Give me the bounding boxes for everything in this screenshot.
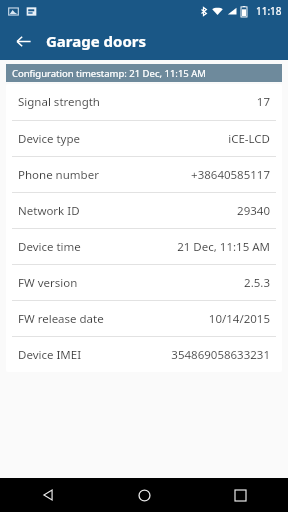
staticText: +38640585117 (191, 167, 270, 183)
staticText: 11:18 (256, 4, 282, 18)
button[interactable]: Phone number (6, 157, 282, 192)
staticText: Signal strength (18, 94, 100, 110)
staticText: 29340 (237, 203, 270, 219)
staticText: Network ID (18, 203, 80, 219)
button[interactable]: FW version (6, 265, 282, 300)
staticText: Configuration timestamp: 21 Dec, 11:15 A… (12, 67, 206, 80)
button[interactable]: Home (96, 478, 192, 512)
button[interactable]: FW release date (6, 301, 282, 336)
button[interactable]: Device time (6, 229, 282, 264)
staticText: FW version (18, 275, 78, 291)
button[interactable]: Back (0, 478, 96, 512)
staticText: iCE-LCD (228, 131, 270, 147)
staticText: 2.5.3 (244, 275, 270, 291)
button[interactable]: Network ID (6, 193, 282, 228)
button[interactable]: Device IMEI (6, 337, 282, 372)
button[interactable]: Signal strength (6, 84, 282, 120)
staticText: 354869058633231 (171, 347, 270, 363)
button[interactable]: Back (8, 26, 38, 56)
staticText: Garage doors (46, 31, 147, 51)
staticText: Device type (18, 131, 81, 147)
staticText: 10/14/2015 (208, 311, 270, 327)
staticText: FW release date (18, 311, 104, 327)
staticText: 21 Dec, 11:15 AM (177, 239, 270, 255)
button[interactable]: Device type (6, 121, 282, 156)
button[interactable]: Recent apps (192, 478, 288, 512)
staticText: Device time (18, 239, 81, 255)
staticText: 17 (256, 94, 270, 110)
staticText: Phone number (18, 167, 99, 183)
staticText: Device IMEI (18, 347, 82, 363)
